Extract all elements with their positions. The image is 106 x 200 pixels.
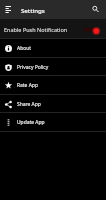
button[interactable]: Share App <box>0 95 106 113</box>
button[interactable]: Enable push notification toggle <box>83 23 100 36</box>
staticText: Enable Push Notification <box>4 26 68 33</box>
staticText: About <box>17 45 32 52</box>
button[interactable]: Privacy Policy <box>0 58 106 76</box>
button[interactable]: Update App <box>0 113 106 131</box>
staticText: Rate App <box>17 82 38 89</box>
staticText: Update App <box>17 119 45 126</box>
staticText: Privacy Policy <box>17 64 49 71</box>
button[interactable]: About <box>0 39 106 57</box>
button[interactable]: Enable Push Notification <box>0 19 106 38</box>
staticText: Share App <box>17 101 41 108</box>
button[interactable]: Menu <box>1 3 15 17</box>
button[interactable]: Search <box>89 3 102 16</box>
staticText: Settings <box>21 6 45 14</box>
button[interactable]: Rate App <box>0 76 106 94</box>
